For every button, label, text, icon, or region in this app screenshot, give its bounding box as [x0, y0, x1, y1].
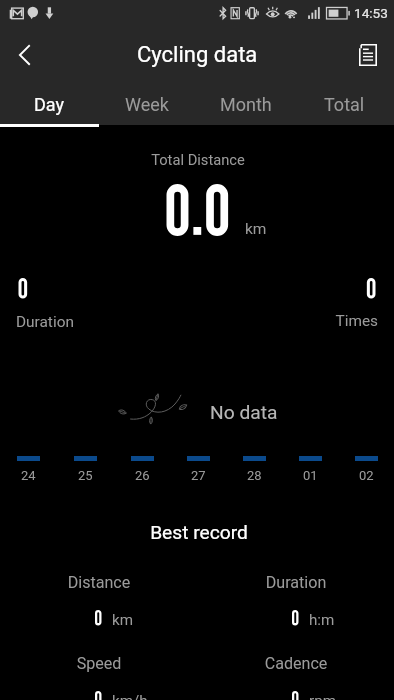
staticText: rpm	[309, 692, 336, 700]
button[interactable]: Day	[0, 83, 98, 125]
button[interactable]: 26	[114, 380, 170, 480]
staticText: Total Distance	[1, 151, 394, 168]
staticText: 26	[135, 468, 150, 480]
staticText: Month	[220, 94, 272, 115]
staticText: Distance	[19, 573, 179, 592]
staticText: Day	[34, 94, 64, 115]
staticText: Speed	[19, 654, 179, 673]
button[interactable]: 02	[338, 380, 394, 480]
button[interactable]: Records	[341, 27, 394, 83]
staticText: 24	[21, 468, 36, 480]
staticText: 02	[359, 468, 374, 480]
staticText: 01	[303, 468, 318, 480]
button[interactable]: 28	[226, 380, 282, 480]
staticText: km	[112, 611, 134, 629]
staticText: 14:53	[354, 5, 388, 21]
staticText: Week	[125, 94, 169, 115]
button[interactable]: Week	[98, 83, 196, 125]
button[interactable]: Total	[295, 83, 394, 125]
staticText: Cycling data	[137, 42, 258, 68]
staticText: 27	[191, 468, 206, 480]
staticText: No data	[210, 401, 278, 424]
button[interactable]: Back	[0, 27, 48, 83]
staticText: h:m	[309, 611, 335, 629]
staticText: Duration	[216, 573, 376, 592]
staticText: Best record	[2, 521, 394, 544]
staticText: km/h	[112, 692, 148, 700]
staticText: 28	[247, 468, 262, 480]
button[interactable]: Month	[196, 83, 295, 125]
button[interactable]: 25	[57, 380, 114, 480]
staticText: Total	[324, 94, 365, 115]
button[interactable]: 01	[282, 380, 338, 480]
staticText: Times	[0, 312, 378, 330]
button[interactable]: 27	[170, 380, 226, 480]
staticText: 25	[78, 468, 93, 480]
staticText: km	[245, 220, 267, 238]
staticText: Duration	[16, 313, 74, 331]
button[interactable]: 24	[0, 380, 57, 480]
staticText: Cadence	[216, 654, 376, 673]
